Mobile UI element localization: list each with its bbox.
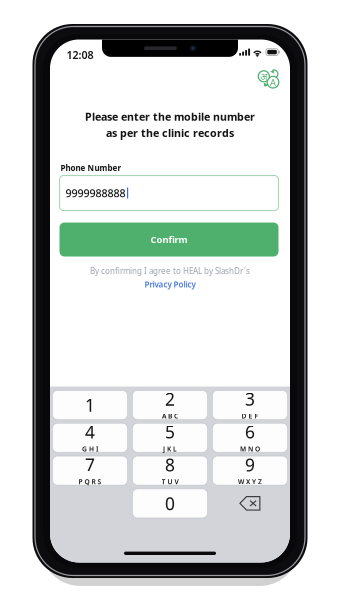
- staticText: 1: [85, 393, 95, 416]
- staticText: 12:08: [66, 48, 93, 62]
- button[interactable]: 4: [52, 423, 127, 452]
- staticText: as per the clinic records: [106, 126, 234, 140]
- staticText: 2: [165, 388, 175, 411]
- button[interactable]: 0: [132, 489, 207, 518]
- staticText: 8: [165, 453, 175, 476]
- button[interactable]: Confirm: [59, 222, 278, 256]
- staticText: 4: [85, 420, 95, 443]
- staticText: Privacy Policy: [144, 279, 195, 290]
- staticText: A B C: [162, 412, 178, 420]
- button[interactable]: Delete: [212, 489, 287, 518]
- staticText: अ: [260, 70, 267, 82]
- staticText: 6: [245, 420, 255, 443]
- staticText: A: [270, 76, 276, 89]
- staticText: By confirming I agree to HEAL by SlashDr…: [90, 265, 250, 276]
- staticText: Please enter the mobile number: [85, 109, 255, 124]
- staticText: W X Y Z: [238, 477, 262, 486]
- button[interactable]: Privacy Policy: [144, 279, 195, 290]
- staticText: M N O: [240, 444, 260, 453]
- staticText: 9: [245, 453, 255, 476]
- button[interactable]: 5: [132, 423, 207, 452]
- button[interactable]: 1: [52, 390, 127, 419]
- staticText: 5: [165, 420, 175, 443]
- staticText: G H I: [82, 444, 98, 453]
- staticText: Phone Number: [60, 162, 121, 173]
- button[interactable]: 9: [212, 456, 287, 485]
- button[interactable]: 7: [52, 456, 127, 485]
- staticText: 9999988888: [65, 186, 125, 200]
- button[interactable]: 2: [132, 390, 207, 419]
- staticText: P Q R S: [78, 477, 101, 486]
- staticText: D E F: [241, 412, 258, 420]
- staticText: J K L: [163, 444, 177, 453]
- staticText: T U V: [161, 477, 178, 486]
- button[interactable]: 8: [132, 456, 207, 485]
- staticText: 7: [85, 453, 95, 476]
- button[interactable]: Change language: [254, 62, 284, 93]
- staticText: 0: [165, 492, 175, 515]
- staticText: 3: [245, 388, 255, 411]
- button[interactable]: 3: [212, 390, 287, 419]
- button[interactable]: 6: [212, 423, 287, 452]
- staticText: Confirm: [150, 233, 187, 246]
